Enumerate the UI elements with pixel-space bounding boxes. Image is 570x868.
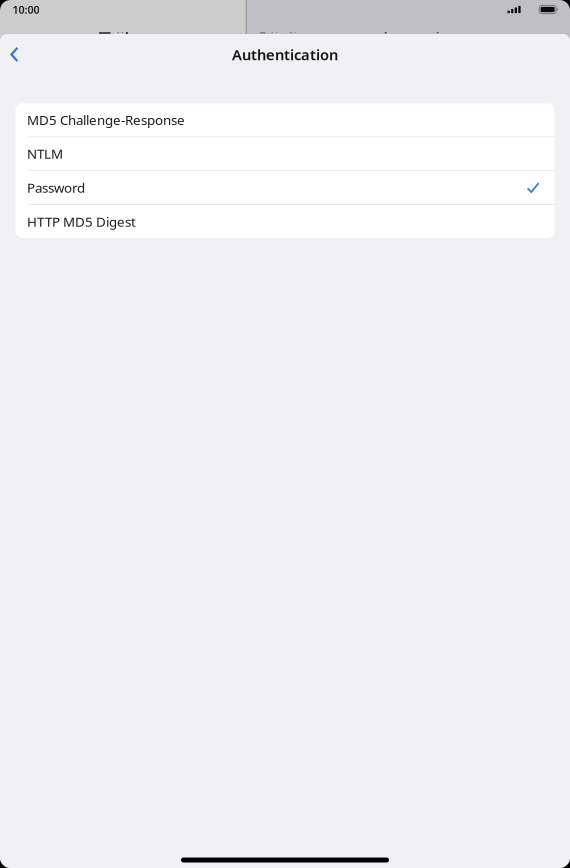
staticText: Authentication: [232, 45, 338, 64]
staticText: Password: [27, 179, 85, 196]
staticText: 10:00: [12, 2, 39, 17]
button[interactable]: Password: [15, 171, 554, 204]
staticText: NTLM: [27, 145, 63, 162]
staticText: MD5 Challenge-Response: [27, 111, 185, 129]
staticText: HTTP MD5 Digest: [27, 213, 136, 230]
button[interactable]: HTTP MD5 Digest: [15, 205, 554, 238]
button[interactable]: MD5 Challenge-Response: [15, 103, 554, 136]
button[interactable]: Back: [0, 34, 33, 75]
button[interactable]: NTLM: [15, 137, 554, 170]
